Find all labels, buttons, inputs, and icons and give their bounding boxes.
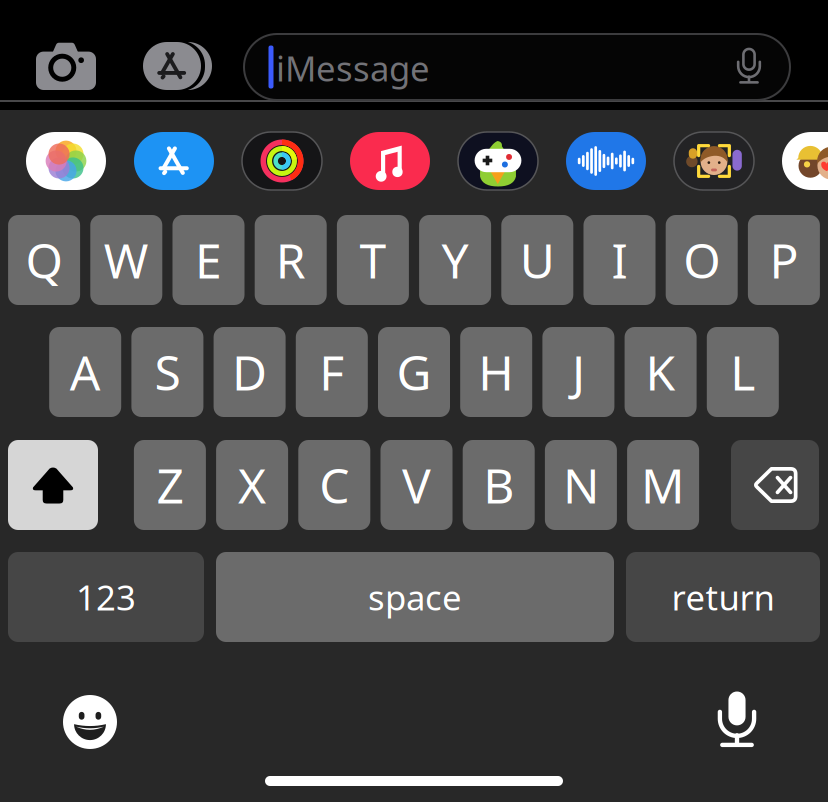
staticText: M — [641, 453, 685, 517]
button[interactable]: Emoji — [52, 684, 128, 760]
button[interactable]: Delete — [731, 440, 819, 530]
staticText: J — [572, 340, 585, 404]
button[interactable]: L — [707, 327, 779, 417]
button[interactable]: Camera — [24, 24, 108, 108]
staticText: X — [238, 453, 266, 517]
button[interactable]: GamePigeon — [458, 132, 538, 190]
staticText: space — [368, 574, 462, 620]
button[interactable]: K — [625, 327, 697, 417]
staticText: B — [483, 453, 514, 517]
staticText: G — [396, 340, 431, 404]
staticText: I — [611, 228, 627, 292]
staticText: V — [402, 453, 431, 517]
button[interactable]: P — [748, 215, 820, 305]
button[interactable]: O — [666, 215, 738, 305]
staticText: T — [359, 228, 386, 292]
button[interactable]: U — [501, 215, 573, 305]
staticText: iMessage — [276, 45, 430, 91]
button[interactable]: Apps — [130, 24, 214, 108]
button[interactable]: return — [626, 552, 820, 642]
staticText: Q — [26, 228, 63, 292]
button[interactable]: B — [463, 440, 535, 530]
button[interactable]: Audio Message — [566, 132, 646, 190]
button[interactable]: A — [49, 327, 121, 417]
button[interactable]: C — [298, 440, 370, 530]
staticText: F — [319, 340, 344, 404]
button[interactable]: I — [583, 215, 655, 305]
staticText: R — [276, 228, 306, 292]
staticText: S — [154, 340, 180, 404]
button[interactable]: Dictate — [723, 41, 775, 93]
staticText: D — [232, 340, 267, 404]
button[interactable]: Music — [350, 132, 430, 190]
staticText: W — [104, 228, 149, 292]
button[interactable]: V — [380, 440, 452, 530]
staticText: O — [683, 228, 720, 292]
button[interactable]: J — [542, 327, 614, 417]
button[interactable]: Q — [8, 215, 80, 305]
button[interactable]: Photos — [26, 132, 106, 190]
button[interactable]: S — [131, 327, 203, 417]
button[interactable]: G — [378, 327, 450, 417]
staticText: return — [671, 574, 774, 620]
staticText: N — [563, 453, 599, 517]
staticText: E — [195, 228, 222, 292]
button[interactable]: Z — [134, 440, 206, 530]
button[interactable]: X — [216, 440, 288, 530]
staticText: H — [478, 340, 514, 404]
button[interactable]: H — [460, 327, 532, 417]
button[interactable]: E — [172, 215, 244, 305]
button[interactable]: M — [627, 440, 699, 530]
button[interactable]: D — [214, 327, 286, 417]
staticText: Y — [442, 228, 469, 292]
button[interactable]: W — [90, 215, 162, 305]
staticText: A — [70, 340, 101, 404]
button[interactable]: Y — [419, 215, 491, 305]
staticText: Z — [156, 453, 183, 517]
button[interactable]: Fitness — [242, 132, 322, 190]
button[interactable]: R — [255, 215, 327, 305]
button[interactable]: Dictation — [699, 682, 775, 758]
staticText: L — [730, 340, 755, 404]
button[interactable]: space — [216, 552, 614, 642]
staticText: 123 — [76, 574, 136, 620]
staticText: C — [319, 453, 349, 517]
button[interactable]: App Store — [134, 132, 214, 190]
button[interactable]: Memoji — [674, 132, 754, 190]
button[interactable]: T — [337, 215, 409, 305]
button[interactable]: N — [545, 440, 617, 530]
button[interactable]: Stickers — [782, 132, 828, 190]
staticText: P — [769, 228, 798, 292]
button[interactable]: F — [296, 327, 368, 417]
staticText: U — [520, 228, 555, 292]
staticText: K — [646, 340, 676, 404]
button[interactable]: Shift — [8, 440, 98, 530]
button[interactable]: 123 — [8, 552, 204, 642]
